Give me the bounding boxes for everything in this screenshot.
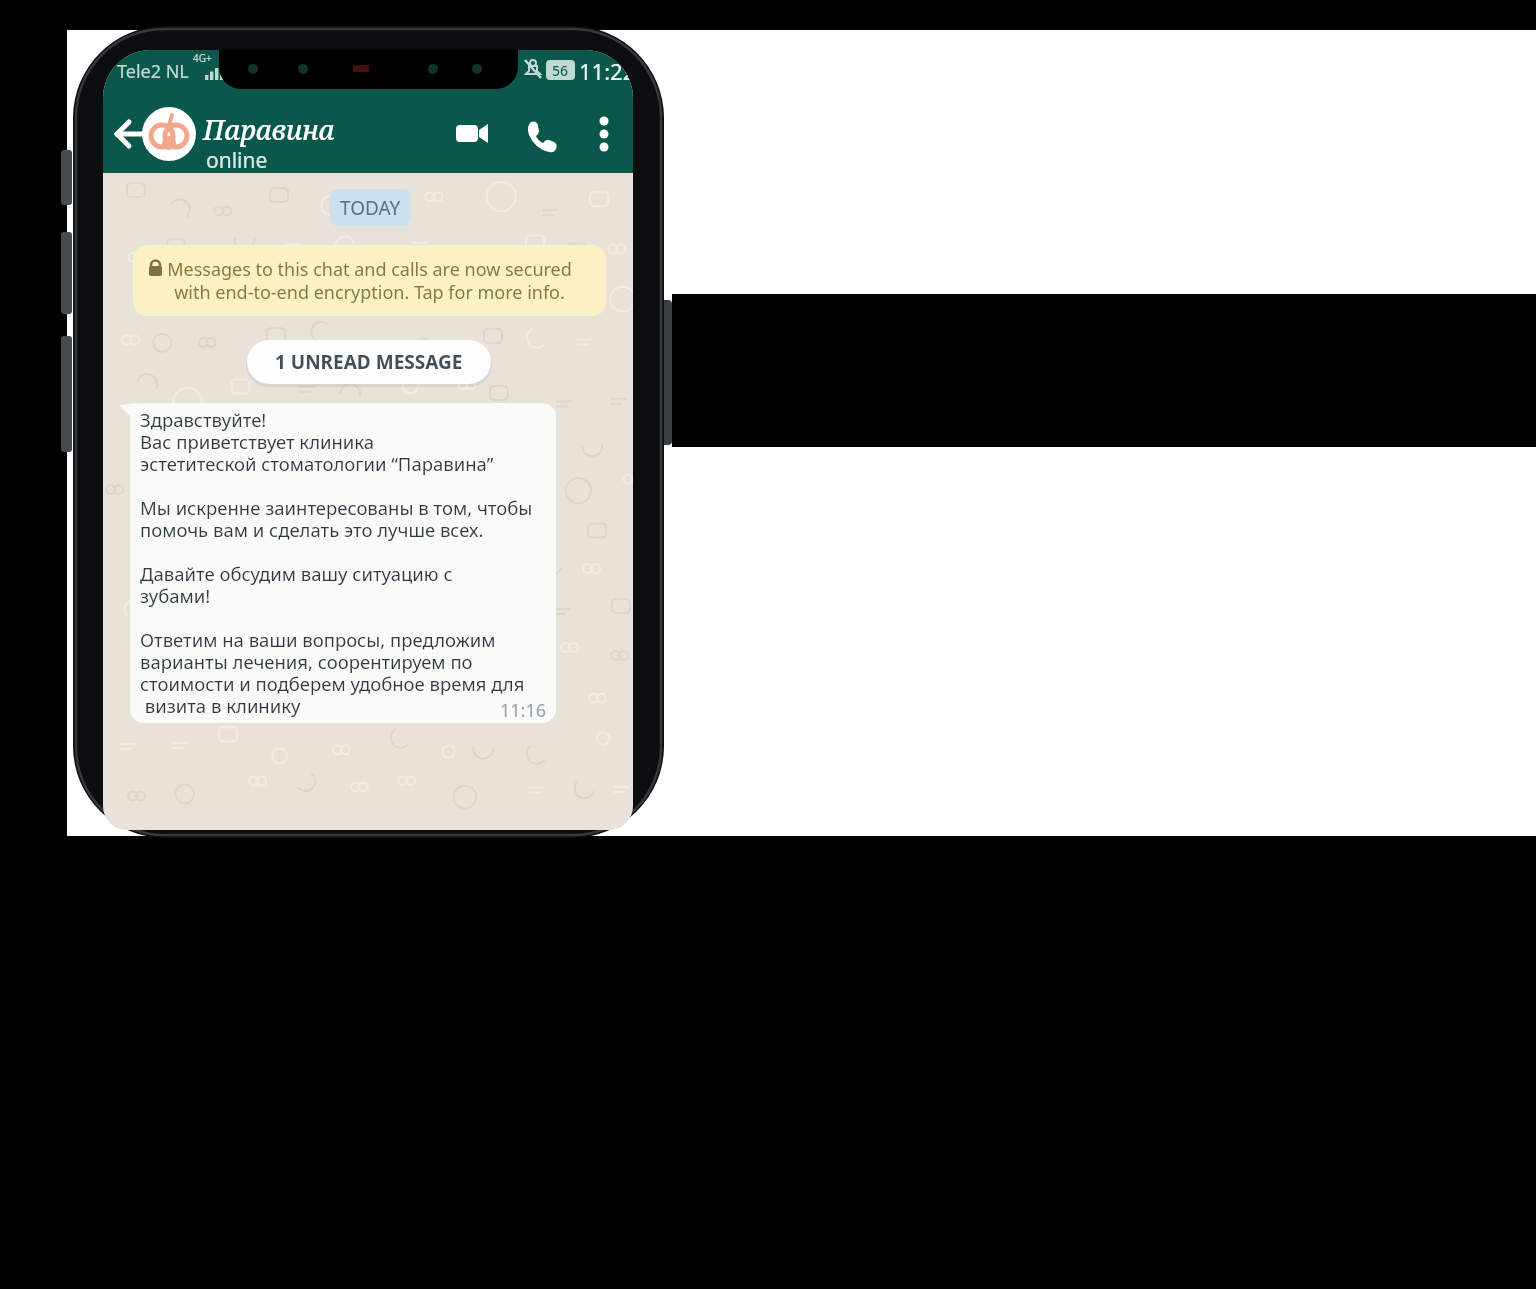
button[interactable]: TODAY bbox=[330, 189, 411, 226]
button[interactable] bbox=[142, 107, 196, 161]
staticText: TODAY bbox=[340, 195, 401, 221]
staticText: online bbox=[206, 146, 268, 175]
staticText: 56 bbox=[552, 61, 569, 80]
staticText: 11:16 bbox=[500, 698, 547, 723]
staticText: Tele2 NL bbox=[117, 59, 189, 84]
button[interactable]: 1 UNREAD MESSAGE bbox=[247, 340, 491, 384]
staticText: Messages to this chat and calls are now … bbox=[167, 257, 572, 304]
button[interactable] bbox=[109, 112, 149, 156]
staticText: Паравина bbox=[203, 111, 335, 148]
button[interactable]: Messages to this chat and calls are now … bbox=[133, 245, 606, 316]
staticText: Здравствуйте! Вас приветствует клиника э… bbox=[140, 407, 533, 719]
button[interactable]: Здравствуйте! Вас приветствует клиника э… bbox=[130, 403, 556, 723]
staticText: 4G+ bbox=[193, 51, 212, 65]
staticText: 1 UNREAD MESSAGE bbox=[275, 349, 463, 375]
button[interactable] bbox=[450, 116, 494, 152]
button[interactable] bbox=[523, 116, 561, 152]
staticText: 11:22 bbox=[579, 56, 633, 86]
button[interactable] bbox=[590, 112, 618, 156]
